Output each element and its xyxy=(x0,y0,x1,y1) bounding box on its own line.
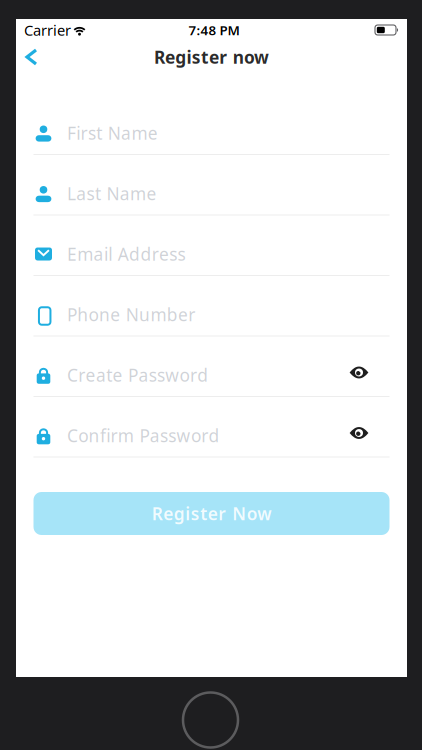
button[interactable]: Last Name xyxy=(33,182,389,215)
button[interactable]: Phone Number xyxy=(33,303,389,336)
staticText: 7:48 PM xyxy=(188,21,239,39)
staticText: Register Now xyxy=(152,502,271,525)
button[interactable]: Register Now xyxy=(33,492,389,535)
staticText: Carrier xyxy=(24,20,71,40)
staticText: Register now xyxy=(154,45,269,68)
button[interactable]: Show password xyxy=(349,368,369,382)
button[interactable]: First Name xyxy=(33,122,389,155)
staticText: Confirm Password xyxy=(67,424,219,447)
button[interactable]: Back xyxy=(25,48,38,65)
staticText: Create Password xyxy=(67,363,208,386)
staticText: Phone Number xyxy=(67,303,195,326)
staticText: Last Name xyxy=(67,182,156,205)
staticText: First Name xyxy=(67,121,158,144)
button[interactable]: Confirm Password xyxy=(33,424,389,457)
staticText: Email Address xyxy=(67,242,186,265)
button[interactable]: Create Password xyxy=(33,364,389,397)
button[interactable]: Show password xyxy=(349,428,369,442)
button[interactable]: Email Address xyxy=(33,243,389,276)
